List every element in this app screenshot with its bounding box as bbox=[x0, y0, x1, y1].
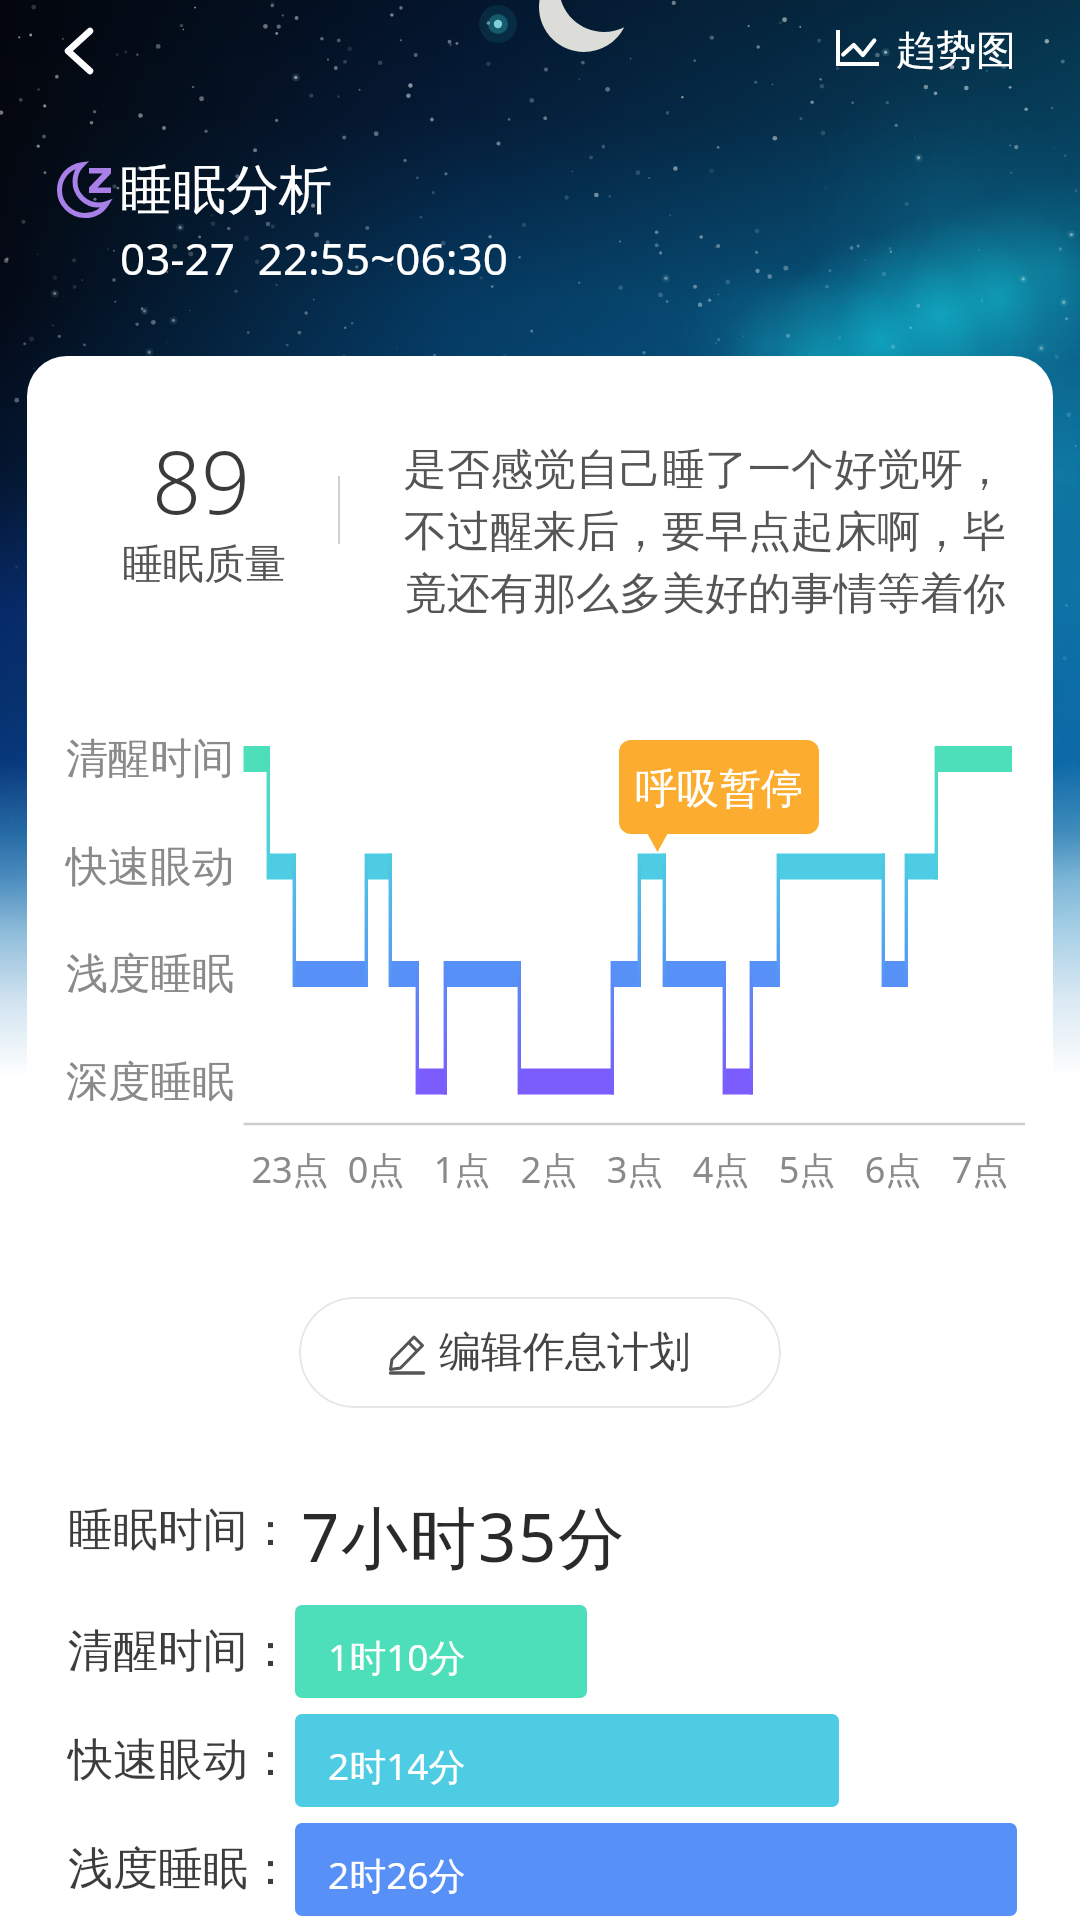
staticText: 0点 bbox=[335, 1145, 417, 1194]
staticText: 睡眠时间： bbox=[68, 1502, 293, 1559]
staticText: 2时26分 bbox=[328, 1849, 466, 1900]
staticText: 03-27 22:55~06:30 bbox=[120, 228, 508, 288]
button[interactable]: 趋势图 bbox=[836, 14, 1016, 86]
staticText: 4点 bbox=[680, 1145, 762, 1194]
staticText: 编辑作息计划 bbox=[439, 1326, 691, 1379]
staticText: 趋势图 bbox=[896, 25, 1016, 75]
staticText: 89 bbox=[152, 422, 251, 539]
staticText: 23点 bbox=[235, 1145, 345, 1194]
staticText: 7小时35分 bbox=[301, 1490, 627, 1582]
staticText: 深度睡眠 bbox=[66, 1056, 234, 1109]
staticText: 浅度睡眠： bbox=[68, 1841, 293, 1898]
staticText: 睡眠分析 bbox=[120, 157, 332, 224]
staticText: 快速眼动： bbox=[68, 1732, 293, 1789]
staticText: 2时14分 bbox=[328, 1740, 466, 1791]
staticText: 快速眼动 bbox=[66, 841, 234, 894]
staticText: 7点 bbox=[939, 1145, 1021, 1194]
staticText: 6点 bbox=[852, 1145, 934, 1194]
button[interactable]: Back bbox=[40, 20, 120, 100]
staticText: 是否感觉自己睡了一个好觉呀， 不过醒来后，要早点起床啊，毕 竟还有那么多美好的事… bbox=[404, 443, 1044, 621]
staticText: 2点 bbox=[508, 1145, 590, 1194]
staticText: 1点 bbox=[421, 1145, 503, 1194]
staticText: 睡眠质量 bbox=[122, 539, 286, 591]
staticText: 浅度睡眠 bbox=[66, 948, 234, 1001]
staticText: 1时10分 bbox=[328, 1631, 466, 1682]
staticText: 呼吸暂停 bbox=[619, 763, 819, 816]
staticText: 5点 bbox=[766, 1145, 848, 1194]
staticText: 清醒时间 bbox=[66, 733, 234, 786]
staticText: 3点 bbox=[594, 1145, 676, 1194]
staticText: 清醒时间： bbox=[68, 1623, 293, 1680]
button[interactable]: 编辑作息计划 bbox=[299, 1297, 781, 1408]
